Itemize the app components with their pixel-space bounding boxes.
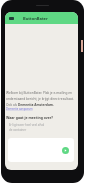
staticText: ButtonBater bbox=[23, 16, 48, 21]
button[interactable]: Send bbox=[8, 138, 74, 162]
button[interactable]: Menu bbox=[9, 17, 14, 20]
button[interactable]: Send bbox=[62, 147, 69, 154]
staticText: Welkom bij ButtonBater. Plak je e-mailin… bbox=[6, 91, 74, 107]
staticText: Dementie aanpassen bbox=[6, 107, 33, 111]
button[interactable]: Dementie aanpassen bbox=[6, 107, 33, 111]
staticText: Er ligt weer heel veel afval de containe… bbox=[9, 123, 45, 132]
button[interactable]: Menu bbox=[5, 12, 78, 24]
staticText: Waar gaat je meeting over? bbox=[6, 115, 53, 120]
